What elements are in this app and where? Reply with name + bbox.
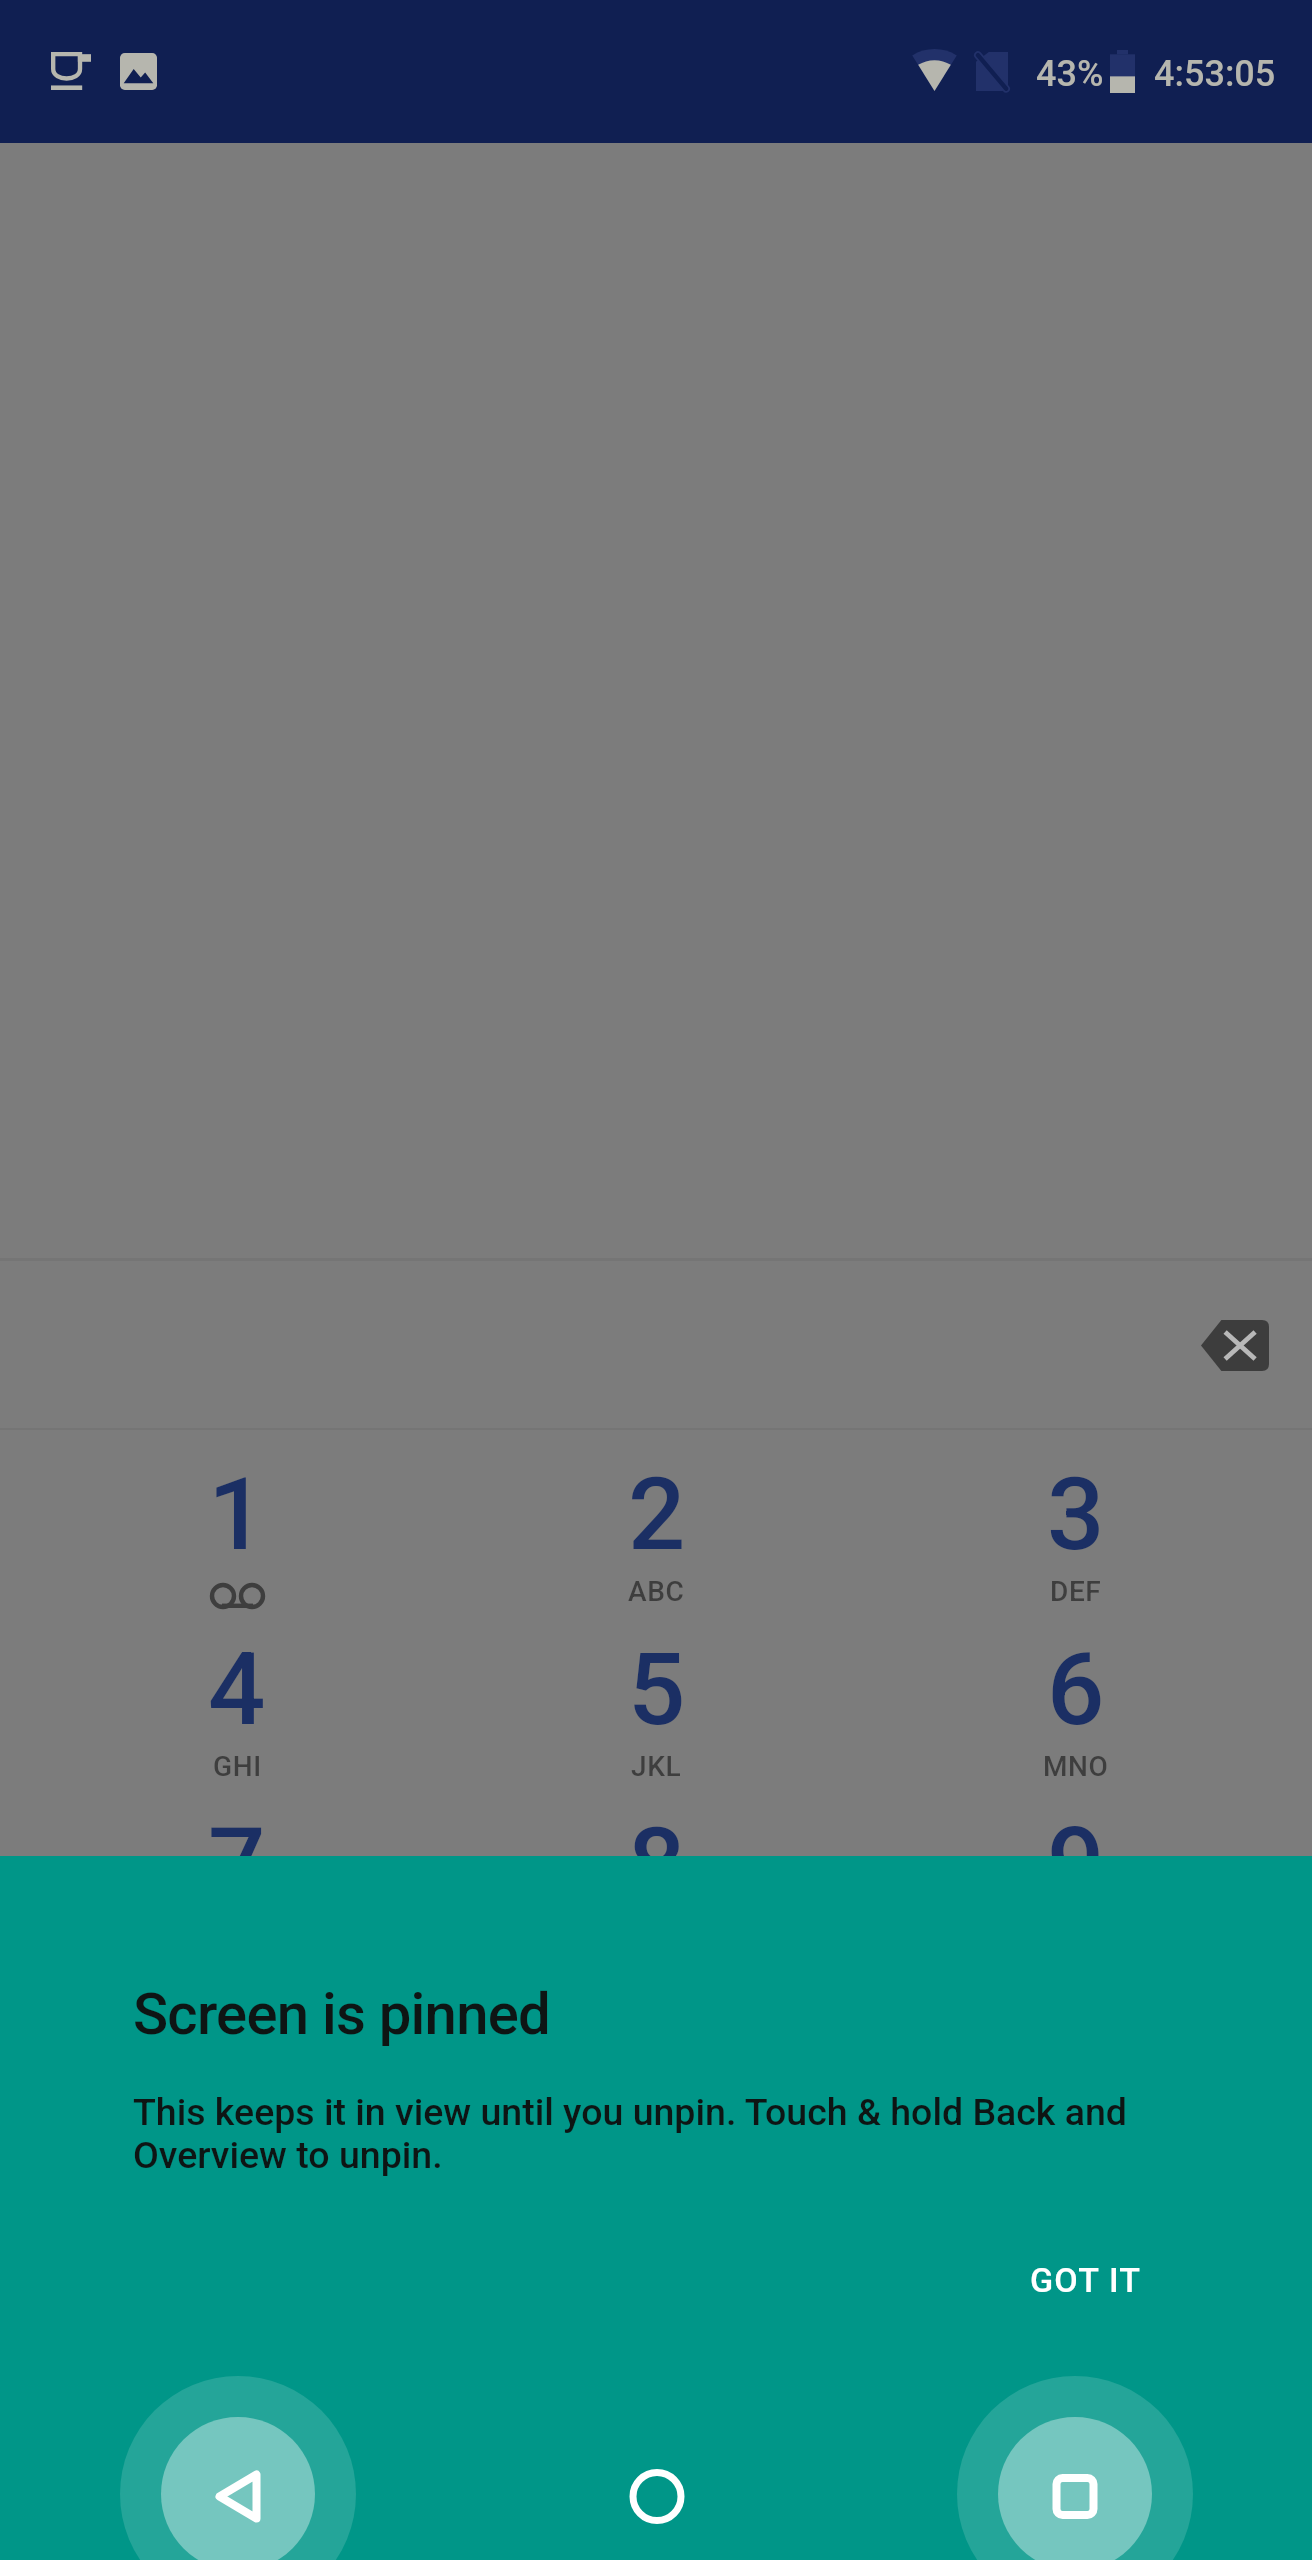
staticText: 1 [208, 1455, 266, 1573]
button[interactable]: 2 [447, 1433, 866, 1608]
button[interactable]: 5 [447, 1608, 866, 1783]
button[interactable]: 8 [447, 1783, 866, 1958]
button[interactable]: 1 [27, 1433, 447, 1608]
staticText: GHI [213, 1750, 262, 1783]
button[interactable]: Home [597, 2434, 717, 2554]
button[interactable]: Overview [957, 2376, 1193, 2560]
staticText: 6 [1047, 1630, 1105, 1748]
staticText: 8 [628, 1805, 686, 1923]
staticText: Screen is pinned [133, 1980, 550, 2048]
button[interactable]: 9 [866, 1783, 1285, 1958]
staticText: 9 [1047, 1805, 1105, 1923]
staticText: ABC [628, 1575, 685, 1608]
staticText: JKL [631, 1750, 682, 1783]
button[interactable]: 3 [866, 1433, 1285, 1608]
button[interactable]: 7 [27, 1783, 447, 1958]
staticText: GOT IT [1030, 2260, 1142, 2300]
button[interactable]: Back [120, 2376, 356, 2560]
button[interactable]: 4 [27, 1608, 447, 1783]
staticText: 4:53:05 [1154, 53, 1276, 95]
button[interactable]: Delete [1169, 1294, 1301, 1396]
staticText: 7 [208, 1805, 266, 1923]
staticText: MNO [1043, 1750, 1109, 1783]
staticText: This keeps it in view until you unpin. T… [133, 2090, 1127, 2177]
staticText: 3 [1047, 1455, 1105, 1573]
staticText: DEF [1050, 1575, 1102, 1608]
staticText: 4 [208, 1630, 266, 1748]
button[interactable]: GOT IT [1006, 2244, 1166, 2316]
button[interactable]: 6 [866, 1608, 1285, 1783]
staticText: 43% [1036, 53, 1104, 95]
staticText: 5 [628, 1630, 686, 1748]
staticText: 2 [628, 1455, 686, 1573]
